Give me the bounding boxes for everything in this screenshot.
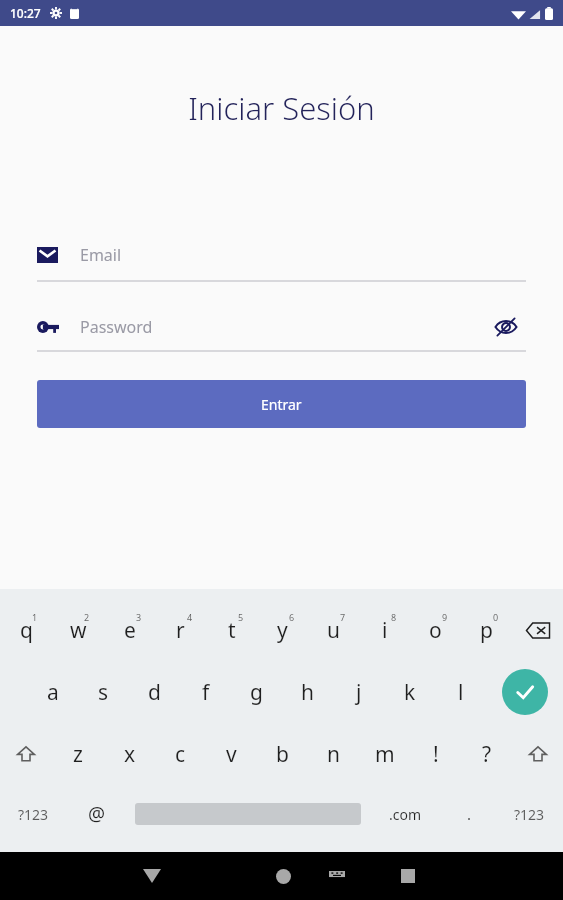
staticText: h	[301, 678, 314, 707]
button[interactable]: 1	[0, 599, 52, 661]
staticText: 8	[391, 611, 397, 623]
button[interactable]: ?123	[496, 785, 563, 843]
button[interactable]: 4	[155, 599, 206, 661]
button[interactable]: Email	[37, 234, 526, 282]
staticText: @	[88, 801, 106, 827]
button[interactable]: .com	[369, 785, 442, 843]
button[interactable]: ?	[461, 723, 512, 785]
button[interactable]: Shift	[0, 723, 52, 785]
staticText: v	[226, 740, 237, 769]
staticText: m	[375, 740, 395, 769]
staticText: Entrar	[261, 395, 302, 414]
staticText: i	[382, 616, 388, 645]
staticText: q	[20, 616, 33, 645]
staticText: ?	[482, 740, 492, 769]
staticText: 4	[187, 611, 193, 623]
staticText: Email	[80, 244, 122, 266]
button[interactable]: Home	[261, 854, 305, 898]
staticText: !	[433, 740, 439, 769]
button[interactable]: ?123	[0, 785, 66, 843]
button[interactable]: Password	[37, 316, 486, 338]
button[interactable]: f	[180, 661, 231, 723]
staticText: f	[202, 678, 210, 707]
button[interactable]: 9	[410, 599, 461, 661]
staticText: n	[327, 740, 340, 769]
button[interactable]: b	[257, 723, 308, 785]
staticText: a	[47, 678, 59, 707]
staticText: Iniciar Sesión	[0, 87, 563, 129]
button[interactable]: x	[104, 723, 155, 785]
button[interactable]: d	[129, 661, 180, 723]
staticText: k	[404, 678, 416, 707]
button[interactable]: 5	[206, 599, 257, 661]
button[interactable]: Entrar	[37, 380, 526, 428]
staticText: l	[458, 678, 464, 707]
staticText: Password	[80, 316, 153, 338]
button[interactable]: k	[384, 661, 435, 723]
staticText: y	[277, 616, 288, 645]
button[interactable]: .	[442, 785, 496, 843]
button[interactable]: h	[282, 661, 333, 723]
staticText: u	[327, 616, 340, 645]
staticText: 0	[493, 611, 499, 623]
button[interactable]: Enter	[502, 669, 548, 715]
staticText: ?123	[514, 805, 545, 824]
staticText: c	[175, 740, 186, 769]
button[interactable]: Recent apps	[386, 854, 430, 898]
button[interactable]: Back	[130, 854, 174, 898]
button[interactable]: Backspace	[512, 599, 563, 661]
button[interactable]: c	[155, 723, 206, 785]
staticText: 9	[442, 611, 448, 623]
button[interactable]: g	[231, 661, 282, 723]
button[interactable]: Toggle password visibility	[486, 307, 526, 347]
button[interactable]: m	[359, 723, 410, 785]
staticText: 7	[340, 611, 346, 623]
staticText: g	[250, 678, 263, 707]
staticText: .	[467, 804, 472, 824]
staticText: d	[148, 678, 161, 707]
staticText: s	[98, 678, 109, 707]
button[interactable]: 7	[308, 599, 359, 661]
button[interactable]: Keyboard	[317, 856, 357, 896]
staticText: t	[228, 616, 236, 645]
staticText: 6	[289, 611, 295, 623]
staticText: 3	[136, 611, 142, 623]
staticText: j	[356, 678, 362, 707]
button[interactable]: l	[435, 661, 486, 723]
staticText: e	[124, 616, 136, 645]
button[interactable]: !	[410, 723, 461, 785]
button[interactable]: 8	[359, 599, 410, 661]
staticText: 2	[84, 611, 90, 623]
button[interactable]: 3	[104, 599, 155, 661]
button[interactable]: 2	[52, 599, 104, 661]
button[interactable]: v	[206, 723, 257, 785]
staticText: x	[124, 740, 136, 769]
staticText: .com	[389, 805, 422, 824]
staticText: p	[480, 616, 493, 645]
button[interactable]: 6	[257, 599, 308, 661]
button[interactable]: s	[78, 661, 129, 723]
button[interactable]: a	[27, 661, 78, 723]
button[interactable]: n	[308, 723, 359, 785]
staticText: o	[429, 616, 442, 645]
button[interactable]: j	[333, 661, 384, 723]
button[interactable]: Shift	[512, 723, 563, 785]
staticText: ?123	[18, 805, 49, 824]
button[interactable]: 0	[461, 599, 512, 661]
staticText: w	[70, 616, 87, 645]
button[interactable]: @	[66, 785, 127, 843]
staticText: z	[73, 740, 83, 769]
staticText: b	[276, 740, 289, 769]
staticText: r	[176, 616, 185, 645]
button[interactable]: z	[52, 723, 104, 785]
staticText: 10:27	[10, 5, 41, 21]
staticText: 1	[32, 611, 38, 623]
staticText: 5	[238, 611, 244, 623]
